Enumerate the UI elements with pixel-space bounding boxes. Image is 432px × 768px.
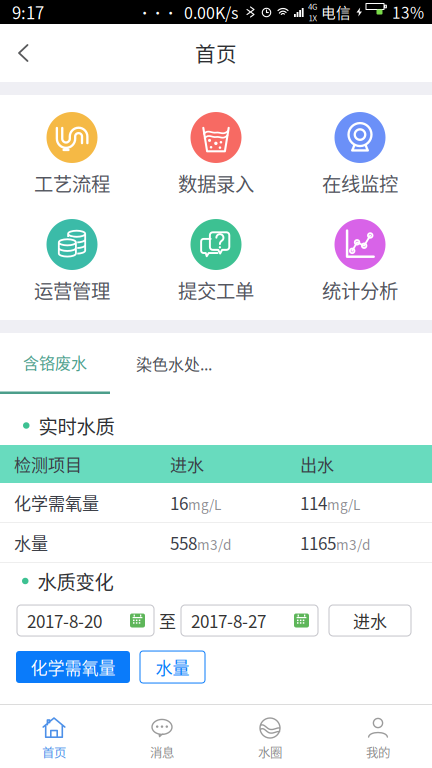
staticText: 含铬废水 bbox=[23, 351, 87, 374]
staticText: 首页 bbox=[42, 743, 66, 761]
staticText: 558 bbox=[170, 530, 197, 555]
staticText: 提交工单 bbox=[178, 276, 254, 304]
staticText: 至 bbox=[159, 608, 176, 633]
button[interactable]: 工艺流程 bbox=[0, 95, 144, 202]
staticText: 工艺流程 bbox=[34, 169, 110, 197]
staticText: 首页 bbox=[195, 38, 237, 68]
staticText: 114 bbox=[300, 490, 327, 515]
staticText: 1165 bbox=[300, 530, 336, 555]
staticText: 检测项目 bbox=[14, 452, 82, 476]
staticText: 2017-8-20 bbox=[27, 608, 102, 633]
button[interactable]: 水量 bbox=[140, 651, 205, 683]
staticText: 4G bbox=[308, 0, 318, 12]
staticText: ••• bbox=[138, 2, 177, 22]
button[interactable]: 2017-8-27 bbox=[181, 605, 318, 636]
button[interactable]: 数据录入 bbox=[144, 95, 288, 202]
staticText: 9:17 bbox=[12, 0, 44, 24]
staticText: mg/L bbox=[327, 494, 360, 514]
staticText: 数据录入 bbox=[178, 169, 254, 197]
button[interactable]: 化学需氧量 bbox=[16, 651, 130, 683]
staticText: 水圈 bbox=[258, 743, 282, 761]
staticText: 13% bbox=[392, 1, 424, 23]
button[interactable]: 消息 bbox=[108, 705, 216, 768]
button[interactable]: 运营管理 bbox=[0, 202, 144, 309]
button[interactable]: 2017-8-20 bbox=[17, 605, 154, 636]
staticText: 出水 bbox=[300, 452, 334, 476]
staticText: 运营管理 bbox=[34, 276, 110, 304]
button[interactable]: 在线监控 bbox=[288, 95, 432, 202]
staticText: 0.00K/s bbox=[184, 0, 238, 24]
button[interactable]: 提交工单 bbox=[144, 202, 288, 309]
staticText: 实时水质 bbox=[38, 411, 114, 439]
staticText: 统计分析 bbox=[322, 276, 398, 304]
button[interactable]: 含铬废水 bbox=[0, 333, 110, 394]
staticText: 电信 bbox=[321, 1, 351, 23]
button[interactable]: 首页 bbox=[0, 705, 108, 768]
button[interactable]: 统计分析 bbox=[288, 202, 432, 309]
staticText: 化学需氧量 bbox=[30, 655, 115, 679]
staticText: 消息 bbox=[150, 743, 174, 761]
staticText: 化学需氧量 bbox=[14, 490, 99, 515]
button[interactable]: Back bbox=[0, 24, 48, 82]
button[interactable]: 水圈 bbox=[216, 705, 324, 768]
button[interactable]: 我的 bbox=[324, 705, 432, 768]
staticText: mg/L bbox=[188, 494, 221, 514]
staticText: 我的 bbox=[366, 743, 390, 761]
staticText: 在线监控 bbox=[322, 169, 398, 197]
staticText: 水质变化 bbox=[37, 567, 113, 595]
staticText: 进水 bbox=[170, 452, 204, 476]
button[interactable]: 染色水处... bbox=[110, 333, 238, 394]
button[interactable]: 进水 bbox=[329, 605, 411, 636]
staticText: 2017-8-27 bbox=[191, 608, 266, 633]
staticText: m3/d bbox=[197, 534, 231, 554]
staticText: 16 bbox=[170, 490, 188, 515]
staticText: m3/d bbox=[336, 534, 370, 554]
staticText: 水量 bbox=[155, 655, 189, 679]
staticText: 染色水处... bbox=[136, 352, 212, 375]
staticText: 1X bbox=[308, 12, 317, 24]
staticText: 水量 bbox=[14, 530, 48, 555]
staticText: 进水 bbox=[353, 608, 387, 633]
